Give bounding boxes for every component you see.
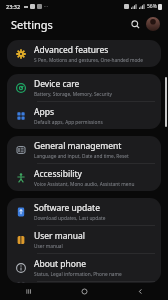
button[interactable]: Search bbox=[127, 16, 143, 32]
staticText: Settings bbox=[11, 17, 53, 32]
button[interactable]: Software update bbox=[7, 198, 161, 225]
button[interactable]: About phone bbox=[7, 254, 161, 281]
button[interactable]: Home bbox=[74, 283, 94, 300]
staticText: 23:32 bbox=[6, 3, 21, 10]
staticText: Default apps, App permissions bbox=[34, 119, 103, 126]
button[interactable]: Back bbox=[130, 283, 150, 300]
button[interactable]: Advanced features bbox=[7, 40, 161, 67]
staticText: S Pen, Motions and gestures, One-handed … bbox=[34, 57, 144, 64]
staticText: Language and input, Date and time, Reset bbox=[34, 153, 129, 160]
staticText: Status, Legal information, Phone name bbox=[34, 271, 122, 278]
staticText: General management bbox=[34, 140, 122, 152]
button[interactable]: Device care bbox=[7, 74, 161, 101]
button[interactable]: Account bbox=[146, 17, 160, 31]
button[interactable]: Developer options bbox=[7, 282, 161, 283]
staticText: ··· bbox=[44, 3, 49, 10]
staticText: Advanced features bbox=[34, 44, 109, 56]
staticText: User manual bbox=[34, 230, 85, 242]
button[interactable]: General management bbox=[7, 136, 161, 163]
button[interactable]: Apps bbox=[7, 102, 161, 129]
staticText: Battery, Storage, Memory, Security bbox=[34, 91, 112, 98]
staticText: Device care bbox=[34, 78, 80, 90]
button[interactable]: Recents bbox=[18, 283, 38, 300]
staticText: About phone bbox=[34, 258, 87, 270]
staticText: Download updates, Last update bbox=[34, 215, 106, 222]
staticText: 56% bbox=[147, 3, 157, 10]
button[interactable]: User manual bbox=[7, 226, 161, 253]
button[interactable]: Accessibility bbox=[7, 164, 161, 191]
staticText: Apps bbox=[34, 106, 54, 118]
staticText: Software update bbox=[34, 202, 100, 214]
staticText: Accessibility bbox=[34, 168, 82, 180]
staticText: Voice Assistant, Mono audio, Assistant m… bbox=[34, 181, 135, 188]
staticText: User manual bbox=[34, 243, 63, 250]
